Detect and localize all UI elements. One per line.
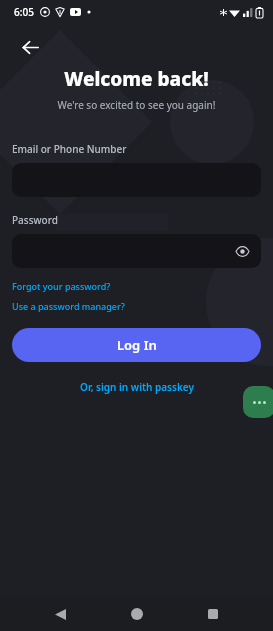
- button[interactable]: Or, sign in with passkey: [0, 380, 273, 394]
- staticText: Log In: [117, 336, 157, 354]
- staticText: Forgot your password?: [12, 280, 111, 292]
- button[interactable]: Show password: [231, 240, 253, 262]
- button[interactable]: Forgot your password?: [12, 280, 111, 292]
- button[interactable]: Log In: [12, 328, 261, 362]
- staticText: Use a password manager?: [12, 300, 125, 312]
- staticText: 6:05: [14, 5, 34, 19]
- button[interactable]: Back: [43, 597, 77, 631]
- button[interactable]: Password field: [12, 234, 261, 268]
- staticText: We're so excited to see you again!: [0, 98, 273, 112]
- button[interactable]: Back: [16, 33, 44, 61]
- button[interactable]: More options: [243, 386, 273, 418]
- staticText: Email or Phone Number: [12, 142, 127, 156]
- button[interactable]: Use a password manager?: [12, 300, 125, 312]
- staticText: Password: [12, 213, 58, 227]
- staticText: Welcome back!: [0, 66, 273, 92]
- button[interactable]: Home: [120, 597, 154, 631]
- button[interactable]: Recent apps: [196, 597, 230, 631]
- staticText: Or, sign in with passkey: [80, 380, 194, 394]
